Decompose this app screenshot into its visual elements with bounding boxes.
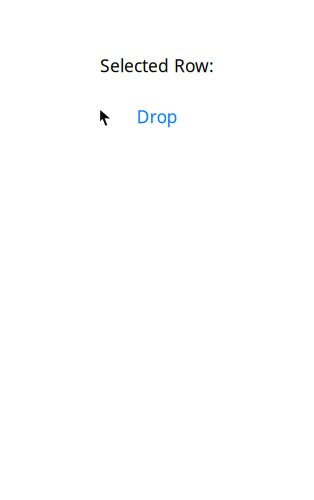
staticText: Drop bbox=[136, 105, 177, 128]
staticText: Selected Row: bbox=[100, 54, 214, 77]
button[interactable]: Drop bbox=[136, 105, 177, 128]
